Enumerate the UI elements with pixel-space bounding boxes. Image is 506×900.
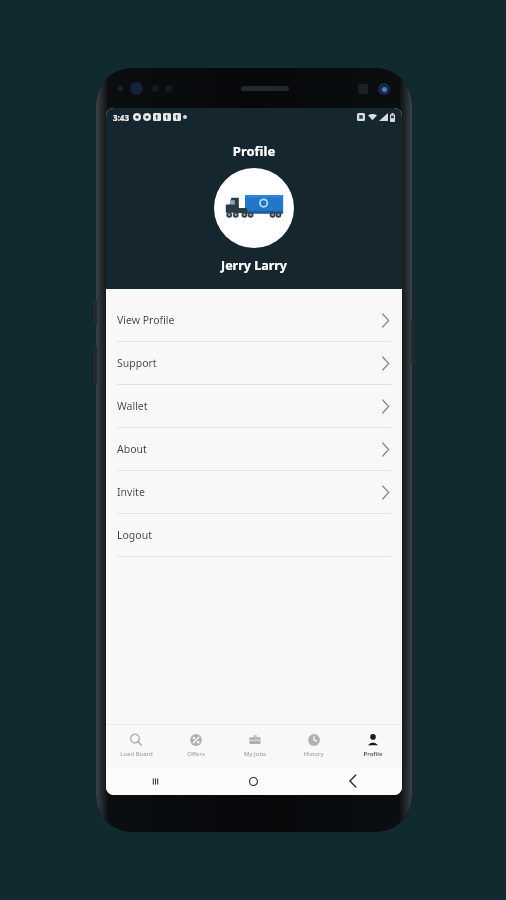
staticText: About — [117, 442, 147, 456]
button[interactable]: Back — [303, 767, 402, 795]
staticText: Profile — [363, 750, 383, 758]
staticText: Offers — [187, 750, 205, 758]
button[interactable]: Profile photo — [214, 168, 294, 248]
staticText: Logout — [117, 528, 152, 542]
staticText: History — [303, 750, 324, 758]
staticText: Wallet — [117, 399, 148, 413]
staticText: Support — [117, 356, 157, 370]
staticText: Load Board — [120, 750, 153, 758]
button[interactable]: Support — [106, 342, 402, 384]
button[interactable]: Wallet — [106, 385, 402, 427]
button[interactable]: Invite — [106, 471, 402, 513]
staticText: Profile — [106, 142, 402, 160]
button[interactable]: Profile — [343, 724, 402, 767]
staticText: View Profile — [117, 313, 175, 327]
button[interactable]: Home — [204, 767, 303, 795]
button[interactable]: Recent apps — [106, 767, 204, 795]
staticText: 3:43 — [113, 112, 129, 123]
button[interactable]: Logout — [106, 514, 402, 556]
button[interactable]: Offers — [166, 724, 225, 767]
staticText: My Jobs — [244, 750, 266, 758]
staticText: Jerry Larry — [221, 257, 287, 274]
button[interactable]: History — [284, 724, 343, 767]
button[interactable]: View Profile — [106, 299, 402, 341]
button[interactable]: My Jobs — [225, 724, 284, 767]
staticText: Invite — [117, 485, 145, 499]
button[interactable]: Load Board — [106, 724, 166, 767]
button[interactable]: About — [106, 428, 402, 470]
